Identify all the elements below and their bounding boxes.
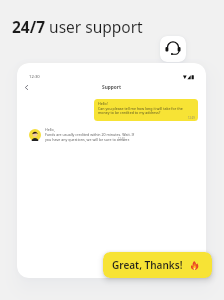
staticText: 12:30 (29, 74, 40, 80)
staticText: Great, Thanks! (112, 258, 183, 272)
staticText: 24/7 user support (12, 16, 143, 37)
button[interactable]: Great, Thanks! (103, 252, 212, 278)
staticText: 12:30 (118, 137, 125, 141)
staticText: Hello! (98, 101, 108, 106)
button[interactable]: Contact support (160, 36, 186, 62)
button[interactable]: Back (22, 83, 31, 92)
staticText: Can you please tell me how long it will … (98, 106, 195, 116)
staticText: Support (102, 84, 122, 91)
staticText: 12:29 (188, 116, 195, 120)
staticText: Funds are usually credited within 20 min… (45, 132, 135, 142)
staticText: Hello, (45, 127, 55, 132)
